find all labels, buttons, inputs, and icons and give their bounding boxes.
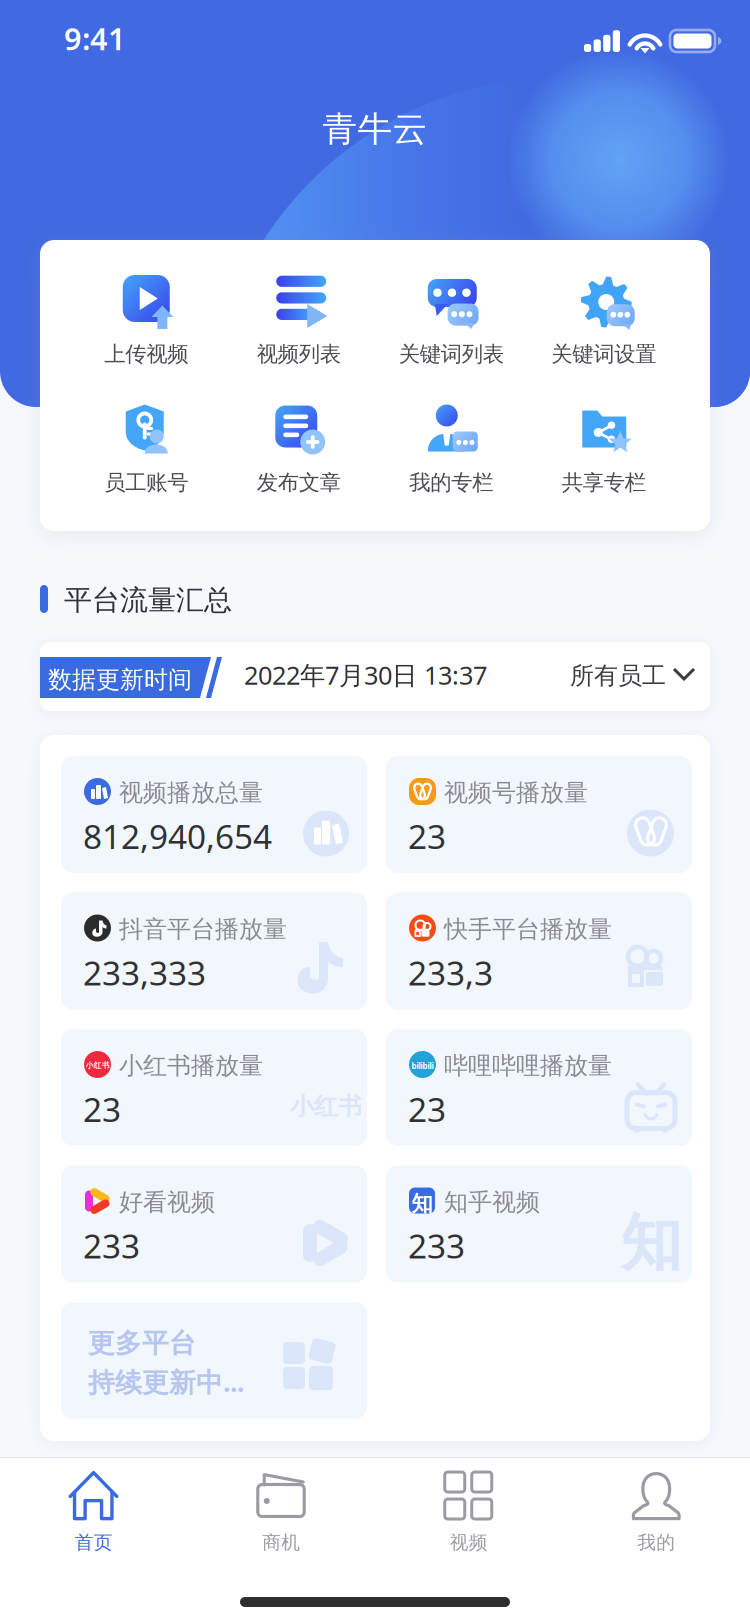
staticText: 持续更新中...: [88, 1364, 244, 1399]
button[interactable]: 视频: [375, 1463, 562, 1573]
staticText: 发布文章: [257, 469, 341, 496]
staticText: 所有员工: [570, 661, 666, 690]
button[interactable]: 上传视频: [70, 273, 222, 383]
staticText: 员工账号: [104, 469, 188, 496]
button[interactable]: 发布文章: [222, 401, 375, 511]
button[interactable]: 关键词设置: [527, 273, 680, 383]
staticText: 233: [83, 1223, 140, 1268]
button[interactable]: 视频号播放量: [386, 756, 692, 873]
staticText: 抖音平台播放量: [119, 914, 287, 944]
staticText: 首页: [75, 1531, 113, 1554]
button[interactable]: 员工账号: [70, 401, 222, 511]
staticText: 9:41: [64, 18, 126, 59]
staticText: 快手平台播放量: [444, 914, 612, 944]
staticText: 23: [83, 1087, 121, 1131]
staticText: 青牛云: [322, 108, 427, 151]
button[interactable]: 好看视频: [61, 1165, 367, 1282]
staticText: 数据更新时间: [48, 665, 192, 694]
staticText: 视频号播放量: [444, 778, 588, 807]
button[interactable]: 我的专栏: [375, 401, 527, 511]
staticText: 小红书: [85, 1060, 109, 1070]
staticText: 好看视频: [119, 1187, 215, 1217]
staticText: 关键词设置: [551, 341, 656, 367]
staticText: 哔哩哔哩播放量: [444, 1051, 612, 1080]
button[interactable]: 共享专栏: [527, 401, 680, 511]
button[interactable]: 视频列表: [222, 273, 375, 383]
staticText: 视频列表: [257, 341, 341, 367]
button[interactable]: 所有员工: [570, 642, 710, 711]
button[interactable]: bilibili: [386, 1029, 692, 1146]
button[interactable]: 快手平台播放量: [386, 892, 692, 1009]
staticText: 233: [408, 1223, 465, 1268]
staticText: 知乎视频: [444, 1187, 540, 1217]
staticText: 2022年7月30日 13:37: [244, 658, 487, 692]
staticText: 视频: [450, 1531, 488, 1554]
button[interactable]: 首页: [0, 1463, 187, 1573]
staticText: 我的专栏: [409, 469, 493, 496]
button[interactable]: 小红书: [61, 1029, 367, 1146]
staticText: 我的: [637, 1531, 675, 1554]
staticText: 233,333: [83, 950, 206, 995]
staticText: 关键词列表: [399, 341, 504, 367]
button[interactable]: 视频播放总量: [61, 756, 367, 873]
staticText: 更多平台: [88, 1327, 196, 1360]
staticText: 视频播放总量: [119, 778, 263, 807]
button[interactable]: 抖音平台播放量: [61, 892, 367, 1009]
staticText: 知: [411, 1190, 432, 1217]
staticText: 上传视频: [104, 341, 188, 367]
staticText: 小红书: [290, 1092, 362, 1121]
staticText: 知: [620, 1205, 681, 1281]
staticText: 233,3: [408, 950, 493, 995]
staticText: 共享专栏: [562, 469, 646, 496]
staticText: 小红书播放量: [119, 1051, 263, 1080]
button[interactable]: 商机: [187, 1463, 375, 1573]
staticText: 23: [408, 1087, 446, 1131]
staticText: 平台流量汇总: [64, 583, 232, 617]
button[interactable]: 我的: [562, 1463, 750, 1573]
staticText: bilibili: [411, 1060, 433, 1071]
staticText: 812,940,654: [83, 814, 272, 858]
staticText: 商机: [262, 1531, 300, 1554]
button[interactable]: 关键词列表: [375, 273, 527, 383]
button[interactable]: 知: [386, 1165, 692, 1282]
button[interactable]: 更多平台: [61, 1302, 367, 1419]
staticText: 23: [408, 814, 446, 858]
